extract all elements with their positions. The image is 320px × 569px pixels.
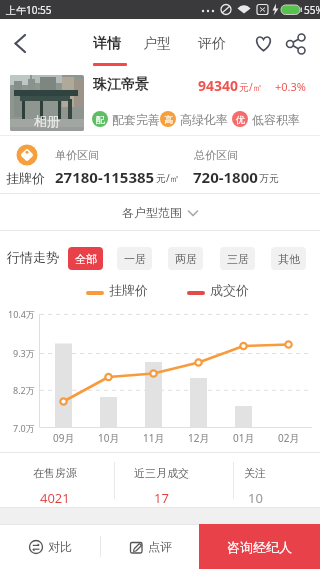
- staticText: 高绿化率: [180, 112, 228, 127]
- staticText: 两居: [175, 252, 197, 266]
- staticText: 94340: [198, 76, 239, 95]
- staticText: 12月: [188, 431, 210, 445]
- button[interactable]: 全部: [68, 247, 103, 270]
- staticText: 7.0万: [13, 422, 35, 434]
- staticText: 其他: [278, 252, 300, 266]
- staticText: 挂牌价: [109, 282, 148, 298]
- staticText: 55%: [304, 3, 320, 17]
- button[interactable]: 其他: [271, 247, 306, 270]
- button[interactable]: 咨询经纪人: [199, 524, 320, 569]
- staticText: 17: [154, 489, 169, 507]
- button[interactable]: 详情: [88, 19, 126, 67]
- button[interactable]: 在售房源: [10, 453, 100, 507]
- staticText: 成交价: [210, 282, 249, 298]
- staticText: 单价区间: [55, 148, 99, 162]
- staticText: 11月: [143, 431, 165, 445]
- staticText: 在售房源: [33, 466, 77, 480]
- staticText: 02月: [278, 431, 300, 445]
- staticText: 点评: [148, 539, 172, 554]
- staticText: 10月: [98, 431, 120, 445]
- staticText: 4021: [40, 489, 70, 507]
- button[interactable]: 关注: [210, 453, 300, 507]
- staticText: 户型: [143, 35, 171, 53]
- staticText: 三居: [227, 252, 249, 266]
- staticText: 01月: [233, 431, 255, 445]
- staticText: 上午10:55: [6, 3, 52, 17]
- button[interactable]: 三居: [220, 247, 255, 270]
- staticText: 珠江帝景: [93, 76, 149, 94]
- staticText: 9.3万: [13, 347, 35, 359]
- staticText: 元/㎡: [239, 80, 263, 94]
- staticText: 评价: [198, 35, 226, 53]
- staticText: 挂牌价: [6, 170, 45, 186]
- staticText: 全部: [75, 252, 97, 266]
- button[interactable]: [248, 29, 279, 60]
- staticText: 高: [164, 114, 173, 125]
- button[interactable]: 对比: [0, 524, 100, 569]
- staticText: 咨询经纪人: [227, 539, 292, 555]
- staticText: 总价区间: [194, 148, 238, 162]
- staticText: 10.4万: [8, 308, 35, 320]
- staticText: 万元: [259, 172, 279, 185]
- button[interactable]: 一居: [117, 247, 152, 270]
- staticText: 近三月成交: [134, 466, 189, 480]
- staticText: 各户型范围: [122, 205, 182, 220]
- staticText: +0.3%: [275, 79, 306, 94]
- button[interactable]: [0, 19, 42, 67]
- button[interactable]: 近三月成交: [116, 453, 206, 507]
- staticText: 配套完善: [112, 112, 160, 127]
- staticText: 27180-115385: [55, 167, 155, 187]
- button[interactable]: 相册: [10, 75, 84, 131]
- staticText: 元/㎡: [156, 171, 180, 185]
- staticText: 8.2万: [13, 384, 35, 396]
- staticText: 行情走势: [7, 249, 59, 265]
- button[interactable]: 户型: [138, 19, 176, 67]
- button[interactable]: 两居: [168, 247, 203, 270]
- staticText: 对比: [48, 539, 72, 554]
- staticText: 详情: [93, 35, 121, 53]
- button[interactable]: 评价: [193, 19, 231, 67]
- staticText: 一居: [124, 252, 146, 266]
- staticText: 720-1800: [193, 167, 258, 187]
- staticText: 低容积率: [252, 112, 300, 127]
- staticText: 相册: [34, 113, 60, 129]
- staticText: 优: [236, 114, 245, 125]
- staticText: 配: [96, 114, 105, 125]
- staticText: 关注: [244, 466, 266, 480]
- button[interactable]: [281, 28, 312, 59]
- button[interactable]: 各户型范围: [0, 194, 320, 230]
- button[interactable]: 点评: [101, 524, 199, 569]
- staticText: 09月: [53, 431, 75, 445]
- staticText: 10: [248, 489, 263, 507]
